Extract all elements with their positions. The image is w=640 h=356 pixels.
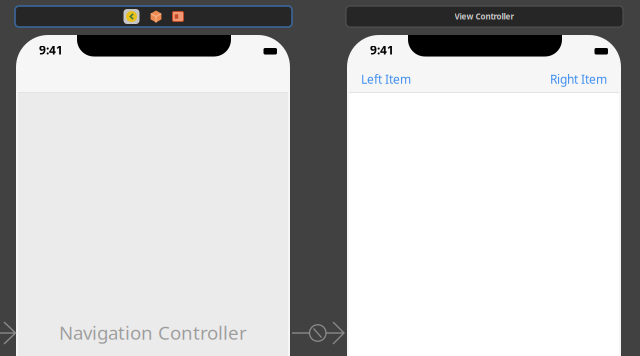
staticText: Right Item — [550, 71, 607, 87]
button[interactable]: First Responder — [150, 10, 161, 22]
button[interactable]: Exit — [172, 9, 183, 24]
staticText: View Controller — [454, 11, 514, 22]
staticText: 9:41 — [39, 42, 63, 58]
button[interactable]: Left Item — [359, 67, 413, 91]
staticText: Left Item — [361, 71, 411, 87]
staticText: 9:41 — [370, 42, 394, 58]
button[interactable]: Right Item — [548, 67, 609, 91]
button[interactable]: Navigation Controller scene object — [123, 9, 139, 24]
staticText: Navigation Controller — [59, 320, 247, 345]
